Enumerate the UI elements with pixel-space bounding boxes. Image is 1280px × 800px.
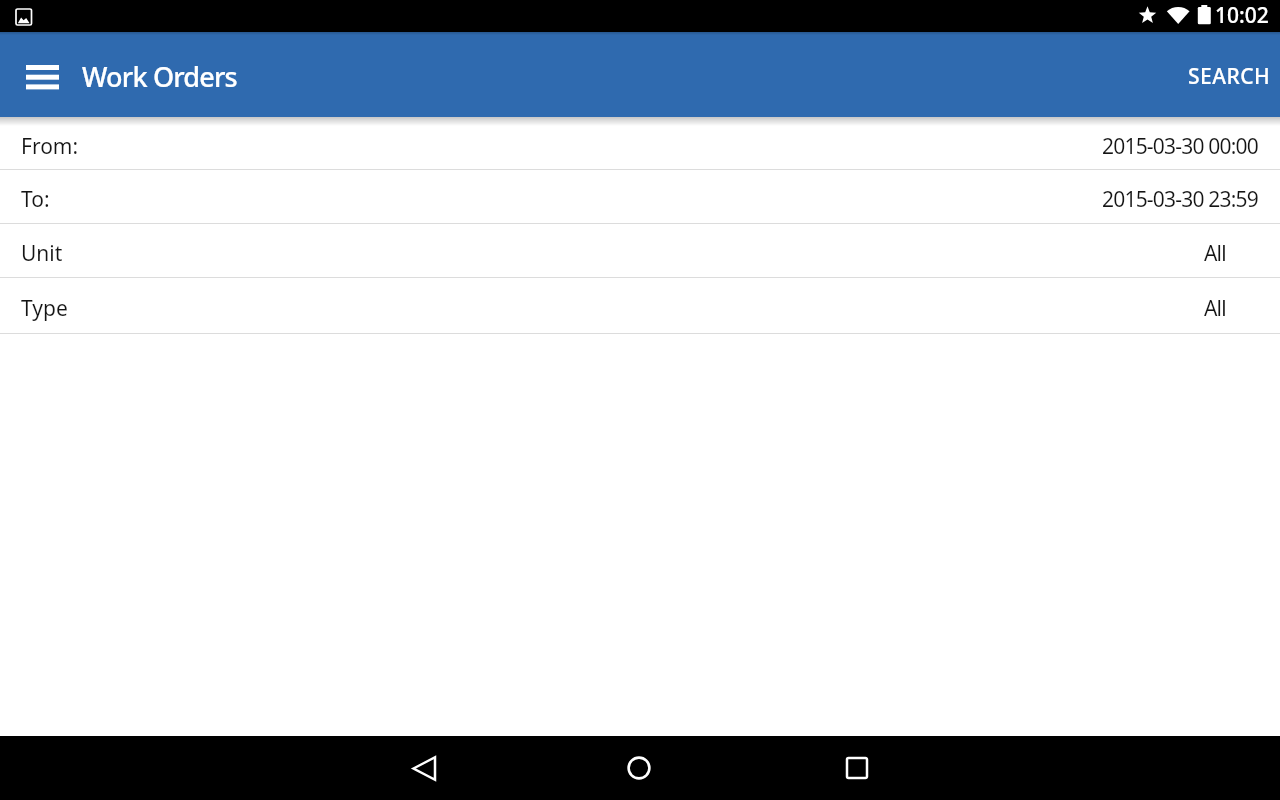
- staticText: All: [1204, 239, 1226, 268]
- button[interactable]: Unit: [0, 224, 1280, 277]
- button[interactable]: [607, 736, 671, 800]
- staticText: Work Orders: [82, 58, 237, 95]
- staticText: All: [1204, 294, 1226, 323]
- staticText: Unit: [21, 239, 63, 268]
- staticText: 2015-03-30 23:59: [1102, 185, 1258, 214]
- staticText: SEARCH: [1188, 62, 1271, 91]
- staticText: 2015-03-30 00:00: [1102, 132, 1258, 161]
- button[interactable]: Type: [0, 278, 1280, 333]
- staticText: From:: [21, 132, 79, 161]
- button[interactable]: [15, 49, 71, 105]
- button[interactable]: From:: [0, 117, 1280, 169]
- button[interactable]: [825, 736, 889, 800]
- button[interactable]: [392, 736, 456, 800]
- button[interactable]: SEARCH: [1188, 60, 1280, 89]
- staticText: To:: [21, 185, 50, 214]
- staticText: Type: [21, 294, 68, 323]
- staticText: 10:02: [1215, 1, 1269, 30]
- button[interactable]: To:: [0, 170, 1280, 223]
